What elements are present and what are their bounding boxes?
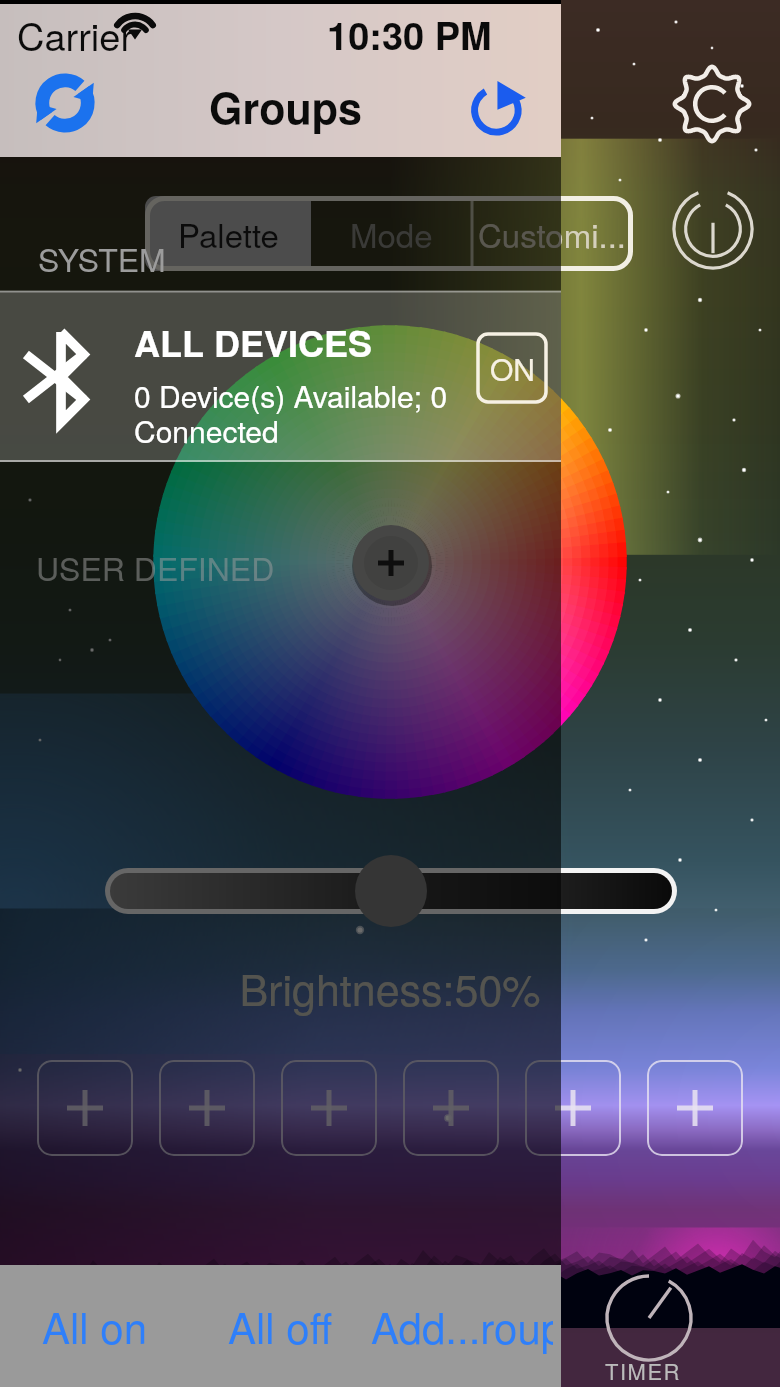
staticText: Groups bbox=[209, 76, 362, 138]
button[interactable]: ON bbox=[476, 332, 548, 404]
button[interactable]: Add preset bbox=[647, 1060, 743, 1156]
button[interactable]: Customi... bbox=[472, 196, 633, 271]
button[interactable]: All off bbox=[200, 1265, 360, 1387]
button[interactable]: Add preset bbox=[37, 1060, 133, 1156]
staticText: All on bbox=[42, 1296, 148, 1356]
button[interactable]: Add preset bbox=[403, 1060, 499, 1156]
button[interactable]: Add preset bbox=[281, 1060, 377, 1156]
button[interactable]: Mode bbox=[311, 196, 472, 271]
staticText: Brightness:50% bbox=[0, 957, 780, 1019]
staticText: USER DEFINED bbox=[36, 544, 275, 590]
button[interactable] bbox=[105, 866, 677, 916]
staticText: Mode bbox=[350, 210, 433, 257]
button[interactable]: Add...roup bbox=[371, 1265, 553, 1387]
button[interactable]: Add preset bbox=[159, 1060, 255, 1156]
staticText: SYSTEM bbox=[38, 235, 166, 281]
staticText: Carrier bbox=[17, 7, 134, 61]
button[interactable]: Sync bbox=[33, 71, 97, 135]
staticText: Add...roup bbox=[371, 1296, 553, 1356]
button[interactable]: Palette bbox=[145, 196, 311, 271]
button[interactable]: All on bbox=[10, 1265, 180, 1387]
staticText: ON bbox=[490, 347, 535, 390]
button[interactable]: Add preset bbox=[525, 1060, 621, 1156]
staticText: TIMER bbox=[605, 1355, 681, 1387]
staticText: Palette bbox=[178, 210, 279, 257]
button[interactable]: ALL DEVICES bbox=[0, 291, 561, 462]
staticText: 0 Device(s) Available; 0 Connected bbox=[134, 374, 448, 452]
staticText: 10:30 PM bbox=[327, 7, 492, 61]
staticText: Customi... bbox=[478, 210, 627, 257]
staticText: ALL DEVICES bbox=[134, 316, 373, 368]
staticText: All off bbox=[228, 1296, 333, 1356]
button[interactable]: Refresh bbox=[466, 72, 532, 138]
